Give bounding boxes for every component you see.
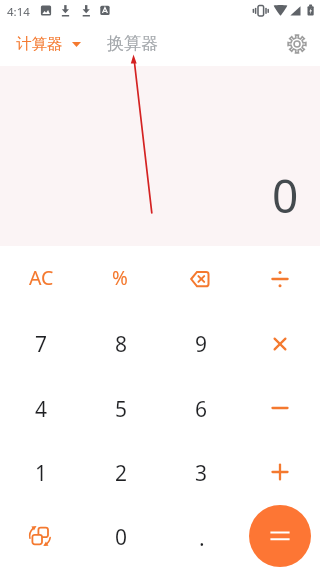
- button[interactable]: 6: [160, 376, 240, 440]
- staticText: 2: [115, 459, 128, 488]
- button[interactable]: 计算器: [0, 34, 89, 54]
- staticText: 4: [35, 395, 48, 424]
- staticText: 6: [195, 395, 208, 424]
- button[interactable]: Minus: [240, 376, 320, 440]
- staticText: 计算器: [16, 34, 63, 54]
- button[interactable]: Divide: [240, 246, 320, 311]
- button[interactable]: AC: [0, 246, 80, 311]
- button[interactable]: 2: [80, 440, 160, 504]
- button[interactable]: 5: [80, 376, 160, 440]
- staticText: 3: [195, 459, 208, 488]
- button[interactable]: Convert units: [0, 504, 80, 568]
- staticText: 5: [115, 395, 128, 424]
- button[interactable]: 9: [160, 311, 240, 376]
- button[interactable]: %: [80, 246, 160, 311]
- button[interactable]: Backspace: [160, 246, 240, 311]
- staticText: 1: [35, 459, 48, 488]
- staticText: 8: [115, 330, 128, 359]
- staticText: %: [112, 265, 128, 291]
- button[interactable]: 0: [80, 504, 160, 568]
- staticText: 7: [35, 330, 48, 359]
- button[interactable]: 8: [80, 311, 160, 376]
- staticText: 0: [272, 164, 299, 227]
- staticText: 0: [115, 523, 128, 552]
- button[interactable]: Multiply: [240, 311, 320, 376]
- button[interactable]: Plus: [240, 440, 320, 504]
- button[interactable]: Equals: [249, 505, 311, 567]
- button[interactable]: 换算器: [105, 27, 160, 60]
- staticText: AC: [29, 264, 54, 291]
- staticText: .: [199, 524, 205, 553]
- staticText: 4:14: [7, 4, 30, 20]
- button[interactable]: Settings: [284, 31, 310, 57]
- button[interactable]: .: [160, 504, 240, 568]
- button[interactable]: 7: [0, 311, 80, 376]
- button[interactable]: 3: [160, 440, 240, 504]
- staticText: 9: [195, 330, 208, 359]
- button[interactable]: 1: [0, 440, 80, 504]
- button[interactable]: 4: [0, 376, 80, 440]
